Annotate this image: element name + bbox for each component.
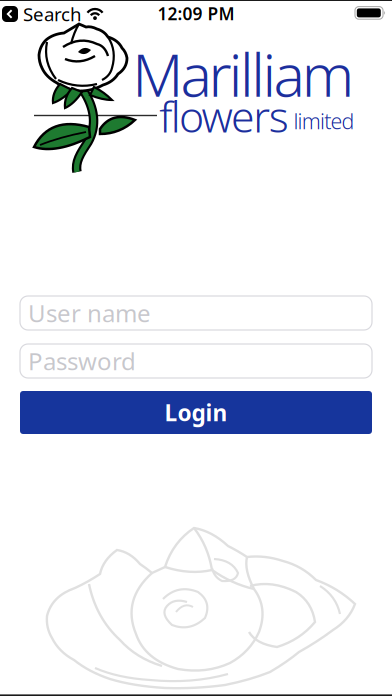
staticText: Password xyxy=(28,345,136,377)
staticText: flowers xyxy=(159,88,289,144)
staticText: Marilliam xyxy=(132,35,354,113)
staticText: Search xyxy=(23,2,82,26)
staticText: Login xyxy=(164,397,227,427)
staticText: User name xyxy=(28,297,151,329)
button[interactable]: Password xyxy=(20,344,372,378)
button[interactable]: Back to Search xyxy=(2,2,82,26)
button[interactable]: Login xyxy=(20,391,372,434)
staticText: 12:09 PM xyxy=(157,2,234,25)
staticText: limited xyxy=(293,107,355,135)
button[interactable]: User name xyxy=(20,296,372,330)
